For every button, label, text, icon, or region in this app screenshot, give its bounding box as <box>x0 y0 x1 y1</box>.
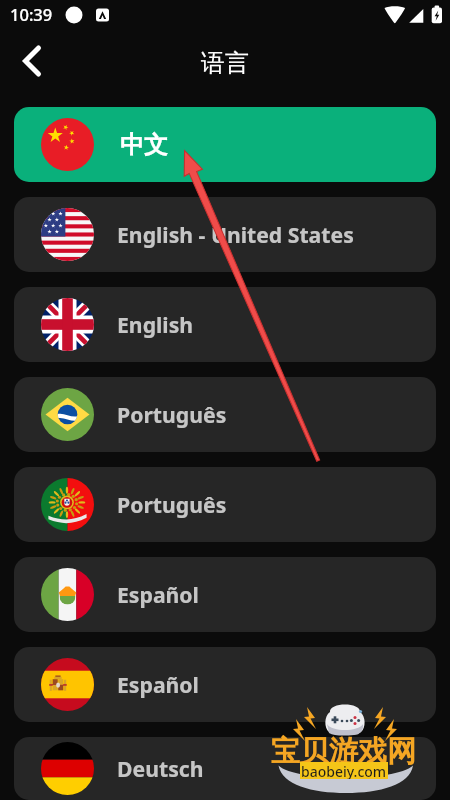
staticText: 宝贝游戏网 <box>271 733 416 770</box>
staticText: Español <box>117 670 199 699</box>
button[interactable]: Back <box>10 41 50 81</box>
button[interactable]: Español <box>14 557 436 632</box>
staticText: English - United States <box>117 220 354 249</box>
staticText: 10:39 <box>10 3 53 25</box>
staticText: English <box>117 310 194 339</box>
button[interactable]: Português <box>14 377 436 452</box>
button[interactable]: 中文 <box>14 107 436 182</box>
staticText: Español <box>117 580 199 609</box>
staticText: Português <box>117 400 227 429</box>
staticText: Português <box>117 490 227 519</box>
button[interactable]: Español <box>14 647 436 722</box>
button[interactable]: English - United States <box>14 197 436 272</box>
button[interactable]: Deutsch <box>14 737 436 800</box>
button[interactable]: Português <box>14 467 436 542</box>
staticText: Deutsch <box>117 754 204 783</box>
staticText: 语言 <box>201 48 249 78</box>
button[interactable]: English <box>14 287 436 362</box>
staticText: 中文 <box>120 130 168 160</box>
staticText: baobeiy.com <box>301 762 387 779</box>
